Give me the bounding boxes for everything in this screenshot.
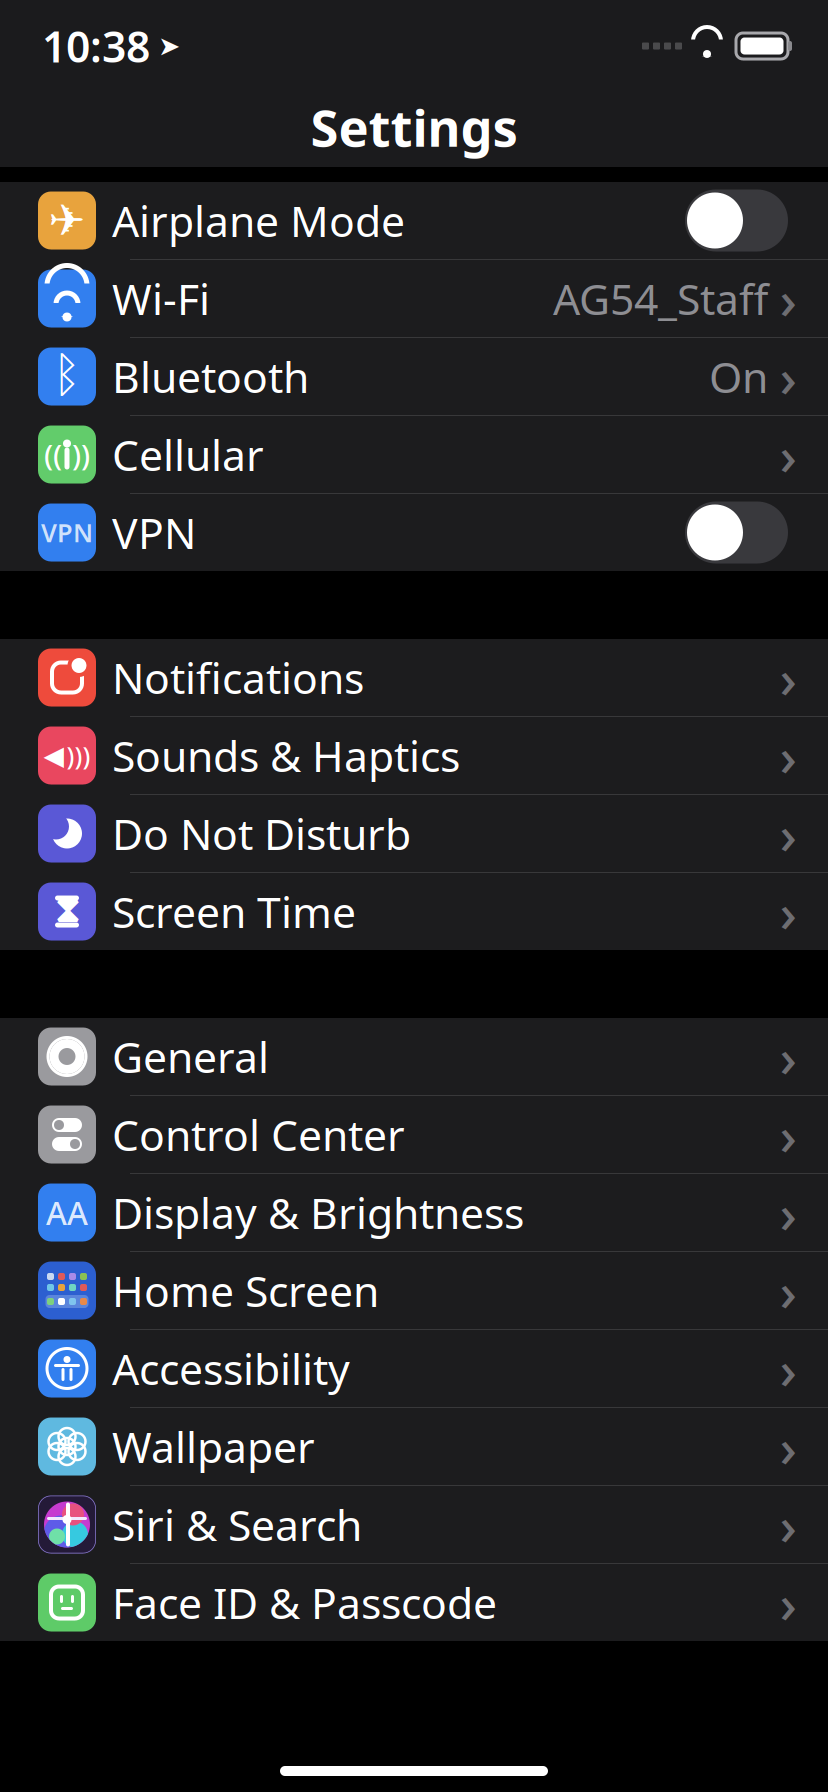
button[interactable]: Siri & Search — [0, 1486, 828, 1563]
button[interactable]: ᛒ — [0, 338, 828, 415]
staticText: ⧗ — [55, 895, 79, 928]
staticText: › — [779, 263, 796, 334]
staticText: VPN — [112, 504, 196, 561]
staticText: 10:38 — [42, 18, 150, 74]
staticText: › — [779, 1255, 796, 1326]
staticText: Settings — [310, 93, 517, 161]
button[interactable]: ⧗ — [0, 873, 828, 950]
button[interactable]: General — [0, 1018, 828, 1095]
staticText: Display & Brightness — [112, 1184, 524, 1241]
staticText: AG54_Staff — [553, 270, 768, 327]
staticText: Home Screen — [112, 1262, 379, 1319]
button[interactable]: ◀ — [0, 717, 828, 794]
button[interactable]: (( — [0, 416, 828, 493]
staticText: › — [779, 1489, 796, 1560]
staticText: Face ID & Passcode — [112, 1574, 497, 1631]
staticText: Sounds & Haptics — [112, 727, 460, 784]
staticText: › — [779, 419, 796, 490]
button[interactable]: Notifications — [0, 639, 828, 716]
staticText: Accessibility — [112, 1340, 350, 1397]
staticText: Siri & Search — [112, 1496, 362, 1553]
button[interactable]: ✈ — [0, 182, 828, 259]
staticText: Wi-Fi — [112, 270, 210, 327]
button[interactable]: Wi-Fi — [0, 260, 828, 337]
staticText: › — [779, 720, 796, 791]
button[interactable]: Do Not Disturb — [0, 795, 828, 872]
staticText: )) — [72, 435, 90, 474]
button[interactable]: Home Screen — [0, 1252, 828, 1329]
staticText: › — [779, 1021, 796, 1092]
staticText: Airplane Mode — [112, 192, 405, 249]
button[interactable]: Accessibility — [0, 1330, 828, 1407]
button[interactable]: Control Center — [0, 1096, 828, 1173]
staticText: › — [779, 876, 796, 947]
button[interactable]: VPN — [0, 494, 828, 571]
staticText: Wallpaper — [112, 1418, 315, 1475]
staticText: › — [779, 1567, 796, 1638]
staticText: Control Center — [112, 1106, 405, 1163]
staticText: › — [779, 1333, 796, 1404]
staticText: Do Not Disturb — [112, 805, 411, 862]
staticText: Cellular — [112, 426, 264, 483]
staticText: ))) — [66, 739, 90, 772]
button[interactable]: AA — [0, 1174, 828, 1251]
staticText: › — [779, 1411, 796, 1482]
staticText: Notifications — [112, 649, 364, 706]
staticText: ✈ — [48, 195, 85, 245]
staticText: VPN — [41, 516, 93, 549]
staticText: › — [779, 1099, 796, 1170]
staticText: › — [779, 341, 796, 412]
staticText: Bluetooth — [112, 348, 309, 405]
button[interactable]: Face ID & Passcode — [0, 1564, 828, 1641]
staticText: › — [779, 642, 796, 713]
staticText: › — [779, 1177, 796, 1248]
staticText: ➤ — [158, 31, 180, 61]
staticText: Screen Time — [112, 883, 356, 940]
staticText: AA — [46, 1191, 88, 1234]
staticText: › — [779, 798, 796, 869]
staticText: General — [112, 1028, 269, 1085]
staticText: ◀ — [43, 740, 64, 771]
button[interactable]: Wallpaper — [0, 1408, 828, 1485]
staticText: On — [709, 348, 768, 405]
staticText: ᛒ — [52, 353, 81, 400]
staticText: (( — [44, 435, 62, 474]
